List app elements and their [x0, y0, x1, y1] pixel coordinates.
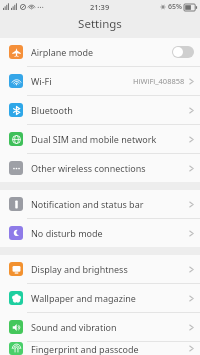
staticText: Display and brightness [31, 263, 189, 275]
staticText: No disturb mode [31, 227, 189, 239]
staticText: Settings [78, 16, 122, 32]
button[interactable]: Wi-Fi [0, 67, 200, 95]
staticText: Airplane mode [31, 46, 172, 58]
staticText: Fingerprint and passcode [31, 343, 189, 355]
button[interactable]: Display and brightness [0, 255, 200, 283]
staticText: Dual SIM and mobile network [31, 133, 189, 145]
staticText: 65% [168, 2, 182, 12]
button[interactable]: Airplane mode toggle, off [172, 46, 194, 58]
staticText: 21:39 [90, 2, 110, 12]
button[interactable]: Sound and vibration [0, 313, 200, 341]
staticText: Wi-Fi [31, 75, 133, 87]
button[interactable]: Fingerprint and passcode [0, 342, 200, 355]
staticText: Wallpaper and magazine [31, 292, 189, 304]
button[interactable]: Dual SIM and mobile network [0, 125, 200, 153]
staticText: Notification and status bar [31, 198, 189, 210]
staticText: Other wireless connections [31, 162, 189, 174]
button[interactable]: No disturb mode [0, 219, 200, 247]
button[interactable]: Wallpaper and magazine [0, 284, 200, 312]
button[interactable]: Airplane mode [0, 38, 200, 66]
staticText: Sound and vibration [31, 321, 189, 333]
button[interactable]: Notification and status bar [0, 190, 200, 218]
staticText: HiWiFi_408858 [133, 76, 185, 86]
button[interactable]: Bluetooth [0, 96, 200, 124]
staticText: Bluetooth [31, 104, 189, 116]
button[interactable]: Other wireless connections [0, 154, 200, 182]
